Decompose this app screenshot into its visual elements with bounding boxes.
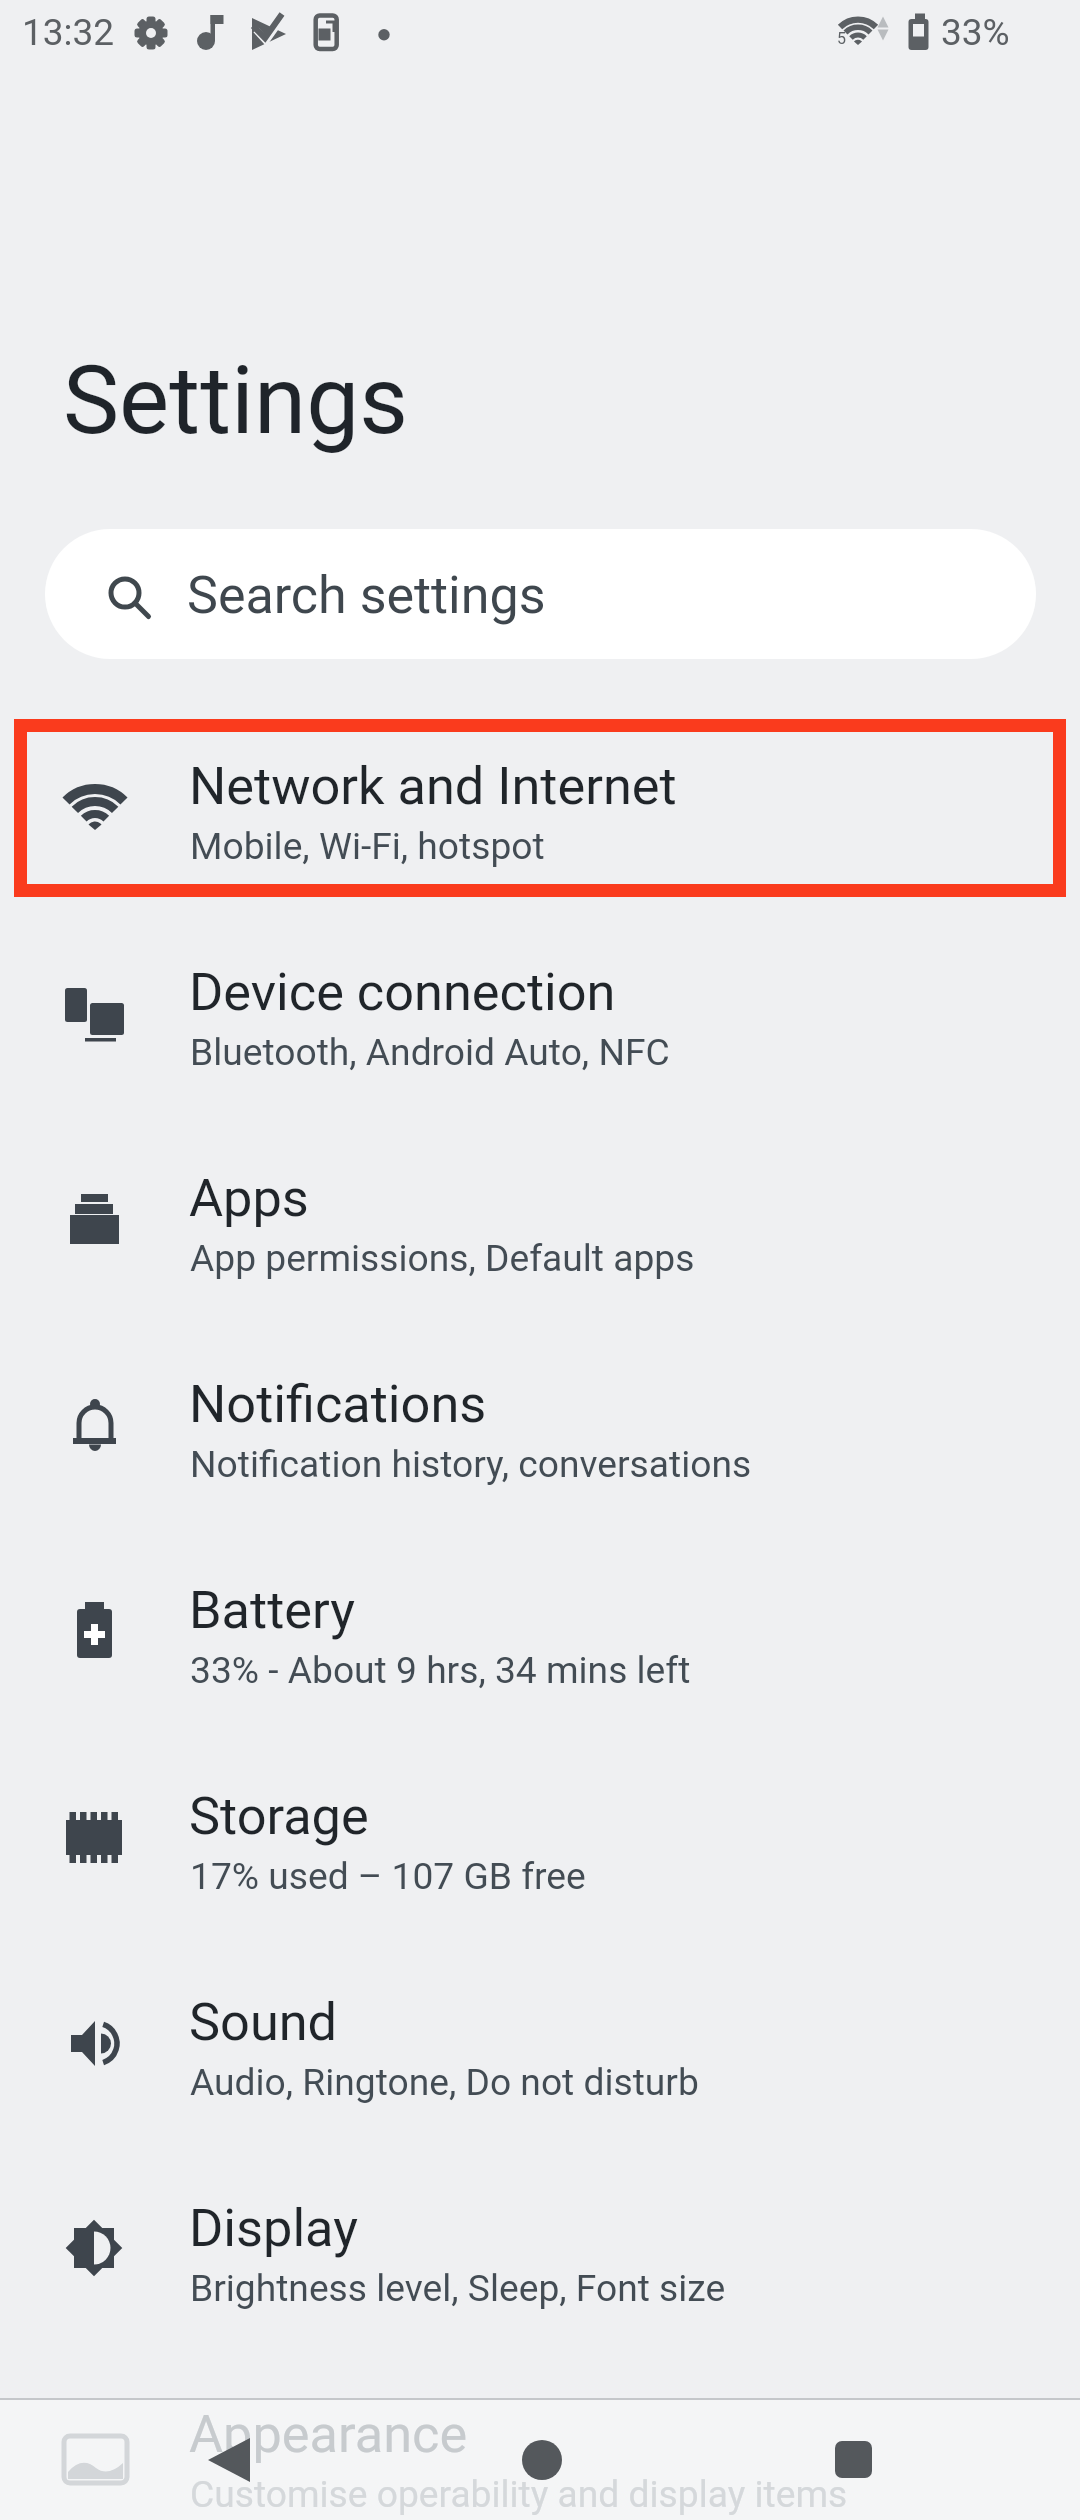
- staticText: 13:32: [22, 11, 115, 54]
- staticText: Notifications: [189, 1373, 487, 1434]
- staticText: 5: [837, 29, 846, 48]
- staticText: Storage: [189, 1785, 369, 1846]
- staticText: 33% - About 9 hrs, 34 mins left: [190, 1648, 691, 1692]
- staticText: Bluetooth, Android Auto, NFC: [190, 1030, 670, 1074]
- staticText: Sound: [189, 1991, 338, 2052]
- staticText: Network and Internet: [189, 755, 677, 816]
- staticText: Device connection: [189, 961, 616, 1022]
- staticText: Search settings: [187, 565, 546, 626]
- staticText: Battery: [189, 1579, 355, 1640]
- staticText: Audio, Ringtone, Do not disturb: [190, 2060, 699, 2104]
- staticText: Settings: [63, 345, 409, 456]
- staticText: Mobile, Wi-Fi, hotspot: [190, 824, 545, 868]
- staticText: Appearance: [189, 2403, 468, 2464]
- staticText: App permissions, Default apps: [190, 1236, 695, 1280]
- staticText: Customise operability and display items: [190, 2472, 848, 2516]
- staticText: Apps: [189, 1167, 309, 1228]
- staticText: 33%: [941, 11, 1010, 54]
- staticText: Notification history, conversations: [190, 1442, 752, 1486]
- staticText: Brightness level, Sleep, Font size: [190, 2266, 726, 2310]
- staticText: Display: [189, 2197, 358, 2258]
- staticText: 17% used – 107 GB free: [190, 1854, 586, 1898]
